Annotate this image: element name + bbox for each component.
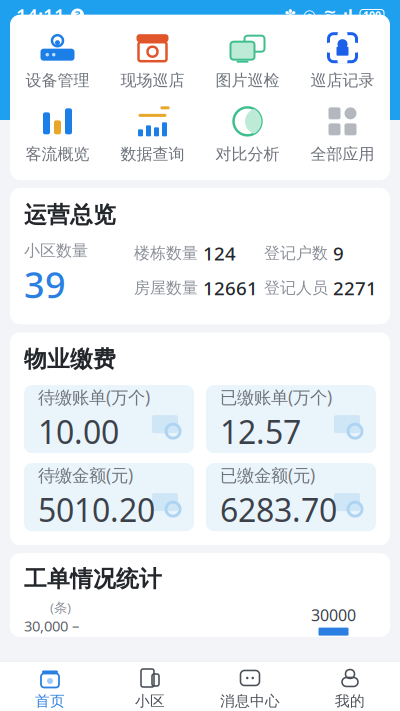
- staticText: 5010.20: [38, 488, 155, 531]
- staticText: 9: [333, 241, 344, 266]
- staticText: 登记户数: [264, 243, 328, 263]
- button[interactable]: 📈: [105, 102, 200, 166]
- staticText: 2271: [333, 276, 377, 300]
- staticText: 我的: [335, 692, 365, 710]
- button[interactable]: 我的: [300, 662, 400, 710]
- button[interactable]: 已缴金额(元): [206, 463, 376, 531]
- staticText: 30000: [311, 604, 356, 626]
- staticText: 首页: [35, 692, 65, 710]
- staticText: 100: [363, 8, 381, 22]
- staticText: 待缴金额(元): [38, 463, 133, 486]
- button[interactable]: 全部应用: [295, 102, 390, 166]
- button[interactable]: 待缴账单(万个): [24, 385, 194, 453]
- button[interactable]: 首页: [0, 662, 100, 710]
- staticText: 12661: [203, 276, 258, 300]
- staticText: 待缴账单(万个): [38, 385, 150, 408]
- staticText: 楼栋数量: [134, 243, 198, 263]
- button[interactable]: 现场巡店: [105, 29, 200, 92]
- staticText: 运营总览: [24, 201, 116, 229]
- staticText: 10.00: [38, 410, 119, 453]
- button[interactable]: 小区: [100, 662, 200, 710]
- staticText: 现场巡店: [120, 71, 184, 90]
- button[interactable]: 客流概览: [10, 102, 105, 166]
- staticText: 房屋数量: [134, 278, 198, 298]
- staticText: 小区: [135, 692, 165, 710]
- staticText: 已缴金额(元): [220, 463, 315, 486]
- button[interactable]: 巡店记录: [295, 29, 390, 92]
- staticText: 图片巡检: [215, 71, 279, 90]
- staticText: 124: [203, 241, 236, 266]
- staticText: ✽: [284, 7, 296, 23]
- staticText: ≋: [323, 6, 336, 24]
- button[interactable]: 图片巡检: [200, 29, 295, 92]
- staticText: 全部应用: [310, 144, 374, 164]
- staticText: (条): [50, 598, 71, 616]
- staticText: 小区数量: [24, 241, 88, 260]
- staticText: 已缴账单(万个): [220, 385, 332, 408]
- staticText: 消息中心: [220, 692, 280, 710]
- staticText: 3: [74, 8, 80, 22]
- staticText: 你好，你真牛: [16, 36, 184, 70]
- button[interactable]: 已缴账单(万个): [206, 385, 376, 453]
- staticText: 6283.70: [220, 488, 337, 531]
- staticText: 30,000 –: [24, 616, 79, 636]
- button[interactable]: 对比分析: [200, 102, 295, 166]
- staticText: 巡店记录: [310, 71, 374, 90]
- staticText: 设备管理: [25, 71, 89, 90]
- button[interactable]: 消息中心: [200, 662, 300, 710]
- button[interactable]: 待缴金额(元): [24, 463, 194, 531]
- staticText: ıl: [343, 4, 353, 26]
- staticText: 39: [24, 260, 66, 308]
- staticText: 对比分析: [215, 144, 279, 164]
- staticText: 工单情况统计: [24, 565, 162, 593]
- staticText: ◎: [303, 7, 316, 23]
- staticText: 12.57: [220, 410, 301, 453]
- staticText: 14:11: [16, 3, 65, 27]
- button[interactable]: 设备管理: [10, 29, 105, 92]
- staticText: 登记人员: [264, 278, 328, 298]
- staticText: 数据查询: [120, 144, 184, 164]
- staticText: 客流概览: [25, 144, 89, 164]
- staticText: 物业缴费: [24, 345, 116, 373]
